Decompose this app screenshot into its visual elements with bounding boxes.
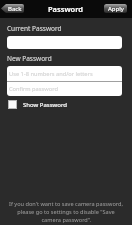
staticText: Back [8, 5, 22, 13]
staticText: camera password". [41, 216, 92, 224]
staticText: New Password [7, 54, 52, 63]
staticText: Use 1-8 numbers and/or letters [9, 70, 93, 78]
button[interactable]: Apply [104, 4, 127, 13]
staticText: Confirm password [9, 85, 58, 93]
staticText: please go to settings to disable "Save [17, 208, 115, 216]
button[interactable] [7, 36, 122, 49]
staticText: Show Password [23, 101, 67, 109]
staticText: Password [48, 4, 84, 14]
button[interactable]: Back [1, 4, 24, 13]
staticText: Current Password [7, 24, 62, 33]
button[interactable]: Use 1-8 numbers and/or letters [7, 66, 122, 81]
button[interactable]: Show Password [8, 100, 67, 109]
staticText: If you don't want to save camera passwor… [9, 200, 123, 208]
staticText: Apply [108, 5, 124, 13]
button[interactable]: Confirm password [7, 82, 122, 96]
